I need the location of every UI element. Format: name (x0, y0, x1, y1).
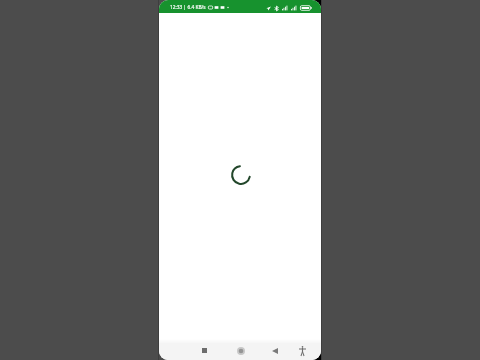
button[interactable]: Accessibility (296, 344, 309, 357)
staticText: 12:33 | 6.4 KB/s (170, 4, 206, 11)
button[interactable]: Home (234, 344, 247, 357)
button[interactable]: Recent apps (198, 344, 211, 357)
button[interactable]: Back (268, 344, 281, 357)
